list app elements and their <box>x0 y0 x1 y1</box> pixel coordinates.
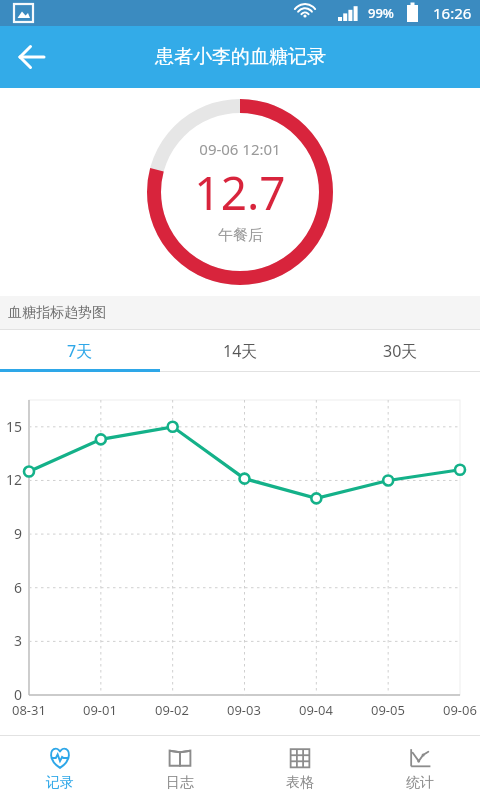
staticText: 99% <box>368 4 394 22</box>
staticText: 16:26 <box>433 3 472 23</box>
staticText: 14天 <box>223 340 258 362</box>
staticText: 09-01 <box>83 701 117 719</box>
staticText: 15 <box>6 417 23 436</box>
staticText: 9 <box>14 524 23 543</box>
staticText: 09-04 <box>299 701 333 719</box>
staticText: 09-06 12:01 <box>199 139 281 159</box>
button[interactable]: 统计 <box>360 736 480 800</box>
staticText: 3 <box>14 631 23 650</box>
staticText: 09-05 <box>371 701 405 719</box>
staticText: 09-02 <box>155 701 189 719</box>
staticText: 记录 <box>46 774 74 792</box>
staticText: 7天 <box>67 340 93 362</box>
button[interactable]: 表格 <box>240 736 360 800</box>
button[interactable]: 日志 <box>120 736 240 800</box>
staticText: 12 <box>6 470 23 489</box>
staticText: 30天 <box>383 340 418 362</box>
button[interactable]: 7天 <box>0 330 160 372</box>
staticText: 09-06 <box>443 701 477 719</box>
staticText: 患者小李的血糖记录 <box>155 45 326 69</box>
staticText: 午餐后 <box>218 226 263 245</box>
button[interactable]: 30天 <box>320 330 480 372</box>
button[interactable]: 记录 <box>0 736 120 800</box>
staticText: 血糖指标趋势图 <box>8 304 106 322</box>
staticText: 12.7 <box>194 161 286 224</box>
staticText: 09-03 <box>227 701 261 719</box>
staticText: 08-31 <box>12 701 46 719</box>
staticText: 0 <box>14 685 23 704</box>
staticText: 统计 <box>406 774 434 792</box>
staticText: 日志 <box>166 774 194 792</box>
staticText: 表格 <box>286 774 314 792</box>
staticText: 6 <box>14 578 23 597</box>
button[interactable]: Back <box>8 33 56 81</box>
button[interactable]: 14天 <box>160 330 320 372</box>
